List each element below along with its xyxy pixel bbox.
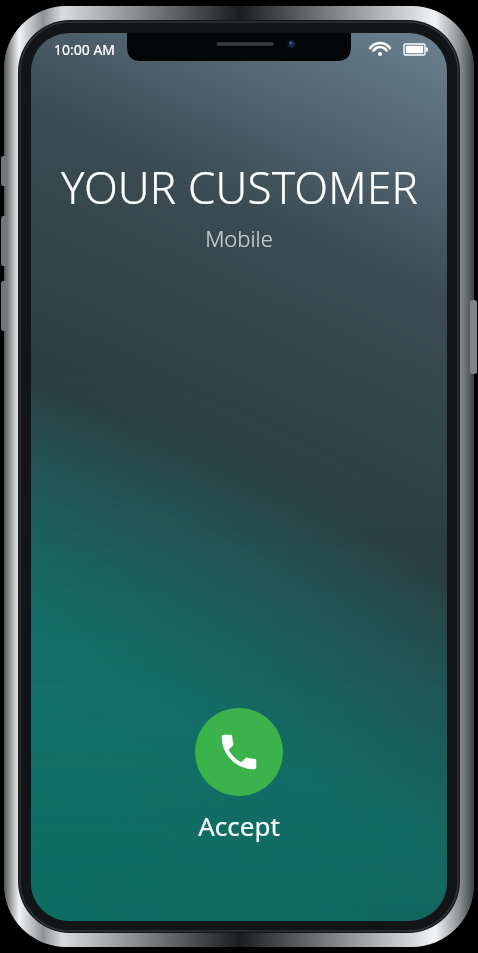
staticText: Accept (198, 808, 280, 843)
staticText: YOUR CUSTOMER (61, 157, 418, 217)
staticText: 10:00 AM (54, 40, 116, 59)
other: Accept call (195, 708, 283, 796)
staticText: Mobile (205, 223, 273, 253)
button[interactable]: Accept call (195, 708, 283, 843)
